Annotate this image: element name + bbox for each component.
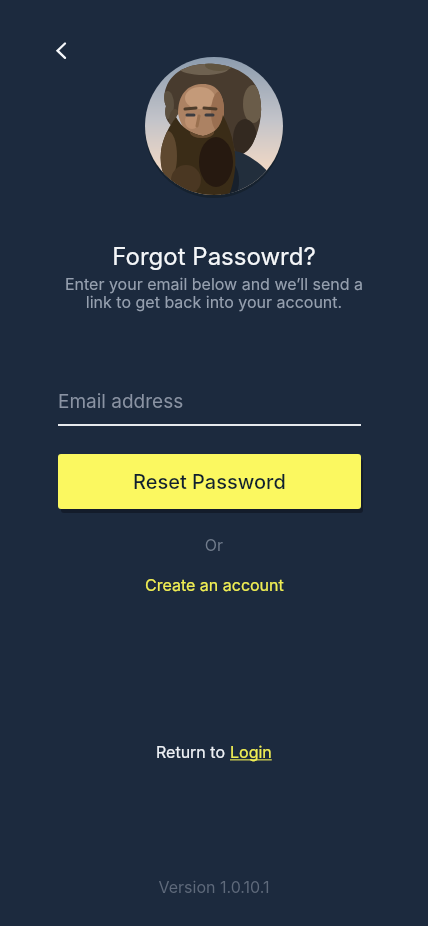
button[interactable]: Email address	[58, 385, 361, 426]
staticText: Login	[230, 742, 272, 761]
staticText: Email address	[58, 390, 184, 413]
staticText: Return to	[156, 742, 230, 761]
staticText: Enter your email below and we’ll send a …	[0, 274, 428, 312]
button[interactable]: Login	[230, 742, 272, 761]
button[interactable]	[44, 36, 76, 68]
button[interactable]: Create an account	[145, 572, 284, 591]
button[interactable]: Reset Password	[58, 454, 361, 509]
staticText: Forgot Passowrd?	[0, 242, 428, 271]
staticText: Or	[0, 535, 428, 554]
staticText: Version 1.0.10.1	[0, 877, 428, 896]
staticText: Reset Password	[133, 470, 286, 494]
staticText: Create an account	[145, 575, 284, 594]
